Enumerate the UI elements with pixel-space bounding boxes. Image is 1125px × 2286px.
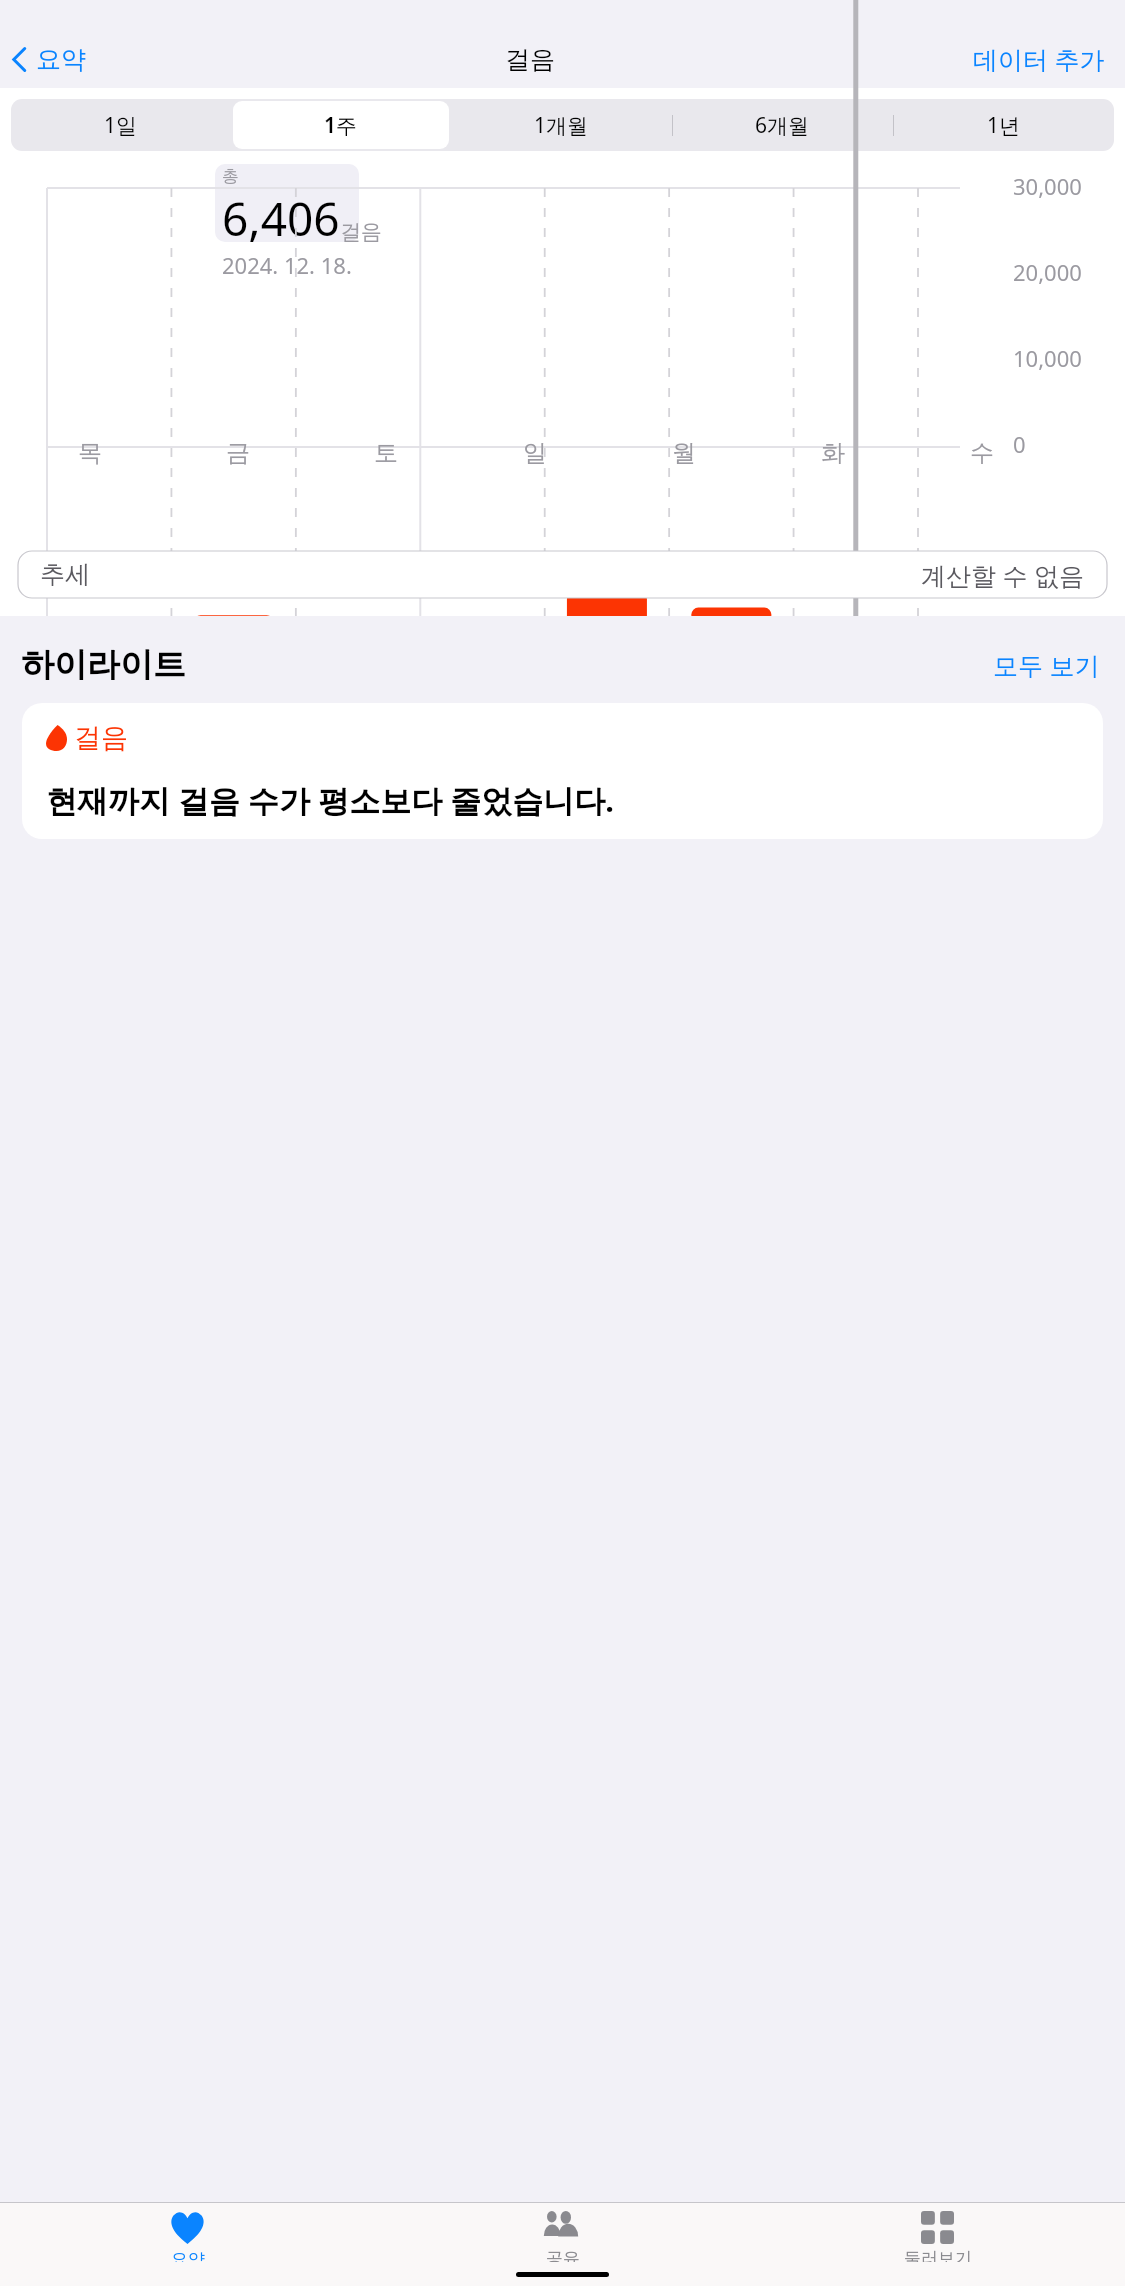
staticText: 총: [222, 166, 239, 187]
button[interactable]: 추세: [18, 551, 1107, 598]
button[interactable]: 1개월: [453, 101, 670, 149]
staticText: 1년: [987, 111, 1021, 140]
button[interactable]: 모두 보기: [989, 644, 1104, 686]
staticText: 걸음: [340, 219, 382, 245]
staticText: 금: [226, 438, 250, 468]
staticText: 추세: [40, 559, 90, 590]
staticText: 6,406: [222, 187, 340, 250]
button[interactable]: 1년: [895, 101, 1112, 149]
staticText: 6개월: [755, 111, 810, 140]
staticText: 걸음: [505, 44, 555, 75]
staticText: 계산할 수 없음: [921, 558, 1085, 592]
staticText: 목: [78, 438, 102, 468]
staticText: 1개월: [534, 111, 589, 140]
staticText: 0: [1013, 429, 1026, 459]
button[interactable]: 1일: [13, 101, 229, 149]
staticText: 10,000: [1013, 343, 1082, 373]
staticText: 데이터 추가: [973, 42, 1105, 76]
staticText: 둘러보기: [904, 2248, 972, 2262]
staticText: 수: [970, 438, 994, 468]
staticText: 모두 보기: [993, 648, 1100, 682]
staticText: 화: [821, 438, 845, 468]
staticText: 걸음: [74, 721, 128, 755]
staticText: 월: [672, 438, 696, 468]
staticText: 30,000: [1013, 171, 1082, 201]
button[interactable]: 둘러보기: [750, 2203, 1125, 2262]
button[interactable]: 데이터 추가: [969, 38, 1109, 80]
staticText: 요약: [171, 2249, 205, 2262]
staticText: 현재까지 걸음 수가 평소보다 줄었습니다.: [46, 779, 614, 821]
staticText: 공유: [546, 2248, 580, 2262]
button[interactable]: 6개월: [674, 101, 891, 149]
button[interactable]: 공유: [375, 2203, 750, 2262]
staticText: 20,000: [1013, 257, 1082, 287]
staticText: 하이라이트: [21, 644, 186, 686]
staticText: 1주: [324, 111, 358, 140]
staticText: 1일: [104, 111, 138, 140]
button[interactable]: 요약: [6, 40, 92, 79]
button[interactable]: 1주: [233, 101, 449, 149]
button[interactable]: 걸음: [22, 703, 1103, 839]
staticText: 2024. 12. 18.: [222, 250, 352, 280]
staticText: 토: [374, 438, 398, 468]
staticText: 요약: [36, 44, 86, 75]
button[interactable]: 요약: [0, 2203, 375, 2262]
staticText: 일: [523, 438, 547, 468]
